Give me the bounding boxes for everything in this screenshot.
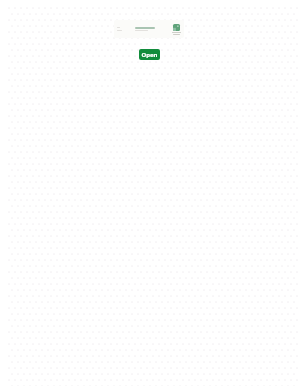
button[interactable] xyxy=(114,20,184,38)
staticText: Open xyxy=(141,51,158,59)
button[interactable]: Open app xyxy=(139,49,160,60)
